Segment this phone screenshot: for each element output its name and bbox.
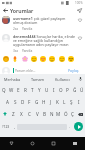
button[interactable]: Yanıtla: [22, 49, 33, 53]
button[interactable]: deneme4444 Sonuçlar harika, elinde ve em…: [0, 31, 85, 53]
button[interactable]: Ü: [78, 84, 85, 96]
button[interactable]: Kullanıcı: [50, 74, 75, 84]
button[interactable]: V: [33, 108, 41, 120]
button[interactable]: .: [67, 120, 72, 133]
button[interactable]: Ç: [69, 108, 76, 120]
staticText: deneme4444 Sonuçlar harika, elinde ve em…: [13, 34, 75, 48]
button[interactable]: Paylaş: [67, 68, 80, 73]
staticText: L: [63, 99, 66, 105]
button[interactable]: M: [55, 108, 62, 120]
staticText: Ğ: [73, 87, 77, 93]
button[interactable]: Like: [76, 16, 83, 23]
staticText: T: [31, 87, 34, 93]
button[interactable]: Recent apps: [43, 137, 64, 150]
button[interactable]: S: [11, 96, 19, 108]
button[interactable]: Back: [0, 6, 10, 14]
button[interactable]: R: [22, 84, 29, 96]
button[interactable]: I: [50, 84, 57, 96]
staticText: Paylaş: [68, 68, 79, 73]
button[interactable]: ?123: [0, 120, 12, 133]
staticText: ,: [14, 124, 16, 130]
button[interactable]: C: [25, 108, 33, 120]
button[interactable]: D: [19, 96, 26, 108]
staticText: Q: [2, 87, 6, 93]
staticText: ?123: [2, 124, 10, 129]
button[interactable]: React: [30, 55, 38, 63]
button[interactable]: Comma: [12, 120, 17, 133]
button[interactable]: Ğ: [71, 84, 78, 96]
button[interactable]: React: [39, 55, 47, 63]
button[interactable]: G: [33, 96, 40, 108]
staticText: Y: [38, 87, 41, 93]
button[interactable]: N: [48, 108, 55, 120]
staticText: I: [78, 99, 80, 105]
button[interactable]: Y: [36, 84, 43, 96]
staticText: 2sa: [13, 27, 19, 31]
button[interactable]: E: [15, 84, 22, 96]
button[interactable]: Q: [0, 84, 8, 96]
button[interactable]: Yanıtla: [22, 27, 33, 31]
staticText: U: [45, 87, 49, 93]
staticText: H: [42, 99, 46, 105]
staticText: G: [35, 99, 39, 105]
button[interactable]: Ş: [68, 96, 75, 108]
button[interactable]: Backspace: [76, 108, 85, 120]
button[interactable]: username1 çok güzel paylaşım olmuş dostu…: [0, 14, 85, 31]
button[interactable]: B: [41, 108, 48, 120]
button[interactable]: J: [47, 96, 54, 108]
button[interactable]: React: [11, 55, 19, 63]
staticText: Ş: [70, 99, 73, 105]
button[interactable]: Voice input: [75, 74, 85, 84]
button[interactable]: K: [54, 96, 61, 108]
button[interactable]: Hide keyboard: [64, 137, 85, 150]
staticText: J: [50, 99, 52, 105]
button[interactable]: W: [8, 84, 15, 96]
button[interactable]: Tamam: [25, 74, 50, 84]
staticText: Merhaba: [4, 77, 21, 82]
button[interactable]: React: [21, 55, 29, 63]
button[interactable]: Shift: [0, 108, 9, 120]
staticText: B: [43, 111, 46, 117]
staticText: Ü: [80, 87, 84, 93]
staticText: D: [21, 99, 25, 105]
staticText: Yanıtla: [22, 27, 33, 31]
button[interactable]: React: [58, 55, 66, 63]
button[interactable]: P: [64, 84, 71, 96]
staticText: Z: [12, 111, 15, 117]
button[interactable]: Ö: [62, 108, 69, 120]
staticText: R: [24, 87, 27, 93]
button[interactable]: F: [26, 96, 33, 108]
staticText: A: [6, 99, 9, 105]
button[interactable]: Z: [9, 108, 17, 120]
staticText: 3sa: [13, 49, 19, 53]
staticText: W: [9, 87, 14, 93]
button[interactable]: O: [57, 84, 64, 96]
button[interactable]: T: [29, 84, 36, 96]
staticText: S: [14, 99, 17, 105]
button[interactable]: U: [43, 84, 50, 96]
staticText: K: [56, 99, 59, 105]
staticText: Ç: [71, 111, 74, 117]
staticText: V: [36, 111, 39, 117]
button[interactable]: L: [61, 96, 68, 108]
staticText: .: [69, 124, 71, 130]
button[interactable]: Home: [22, 137, 43, 150]
button[interactable]: Merhaba: [0, 74, 25, 84]
staticText: P: [66, 87, 69, 93]
button[interactable]: Send: [72, 120, 85, 133]
button[interactable]: A: [3, 96, 11, 108]
staticText: I: [53, 87, 55, 93]
button[interactable]: Like: [76, 34, 83, 41]
button[interactable]: React: [48, 55, 56, 63]
staticText: Ö: [64, 111, 68, 117]
button[interactable]: React: [67, 55, 75, 63]
button[interactable]: X: [17, 108, 25, 120]
button[interactable]: React: [2, 55, 10, 63]
button[interactable]: H: [40, 96, 47, 108]
button[interactable]: I: [75, 96, 82, 108]
staticText: Yanıtla: [22, 49, 33, 53]
staticText: Yorumlar: [10, 7, 34, 14]
button[interactable]: Share: [73, 6, 85, 14]
button[interactable]: Back: [0, 137, 22, 150]
